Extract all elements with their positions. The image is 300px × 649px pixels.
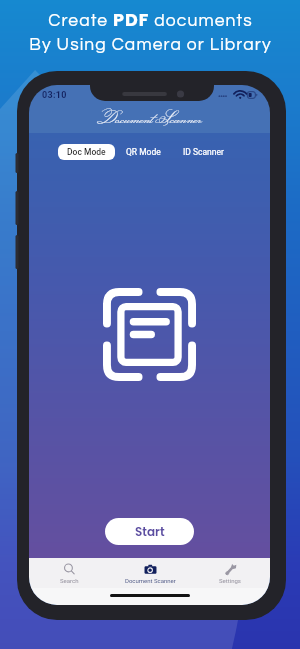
button[interactable]: QR Mode	[115, 144, 172, 160]
button[interactable]: Start	[105, 518, 194, 545]
staticText: ID Scanner	[183, 147, 224, 157]
staticText: Document Scanner	[97, 106, 203, 131]
staticText: QR Mode	[126, 147, 161, 157]
button[interactable]: Scan document	[103, 288, 196, 381]
staticText: 03:10	[42, 90, 67, 101]
staticText: Start	[135, 523, 165, 540]
staticText: By Using Camera or Library	[29, 36, 272, 54]
staticText: Doc Mode	[67, 147, 106, 157]
button[interactable]: Doc Mode	[58, 144, 115, 160]
button[interactable]: Document Scanner	[110, 563, 190, 584]
staticText: Search	[60, 577, 79, 584]
staticText: Document Scanner	[125, 577, 176, 584]
button[interactable]: ID Scanner	[172, 144, 235, 160]
staticText: Settings	[219, 577, 241, 584]
button[interactable]: Settings	[190, 563, 270, 584]
button[interactable]: Search	[29, 563, 110, 584]
staticText: Create PDF documents	[48, 8, 253, 33]
